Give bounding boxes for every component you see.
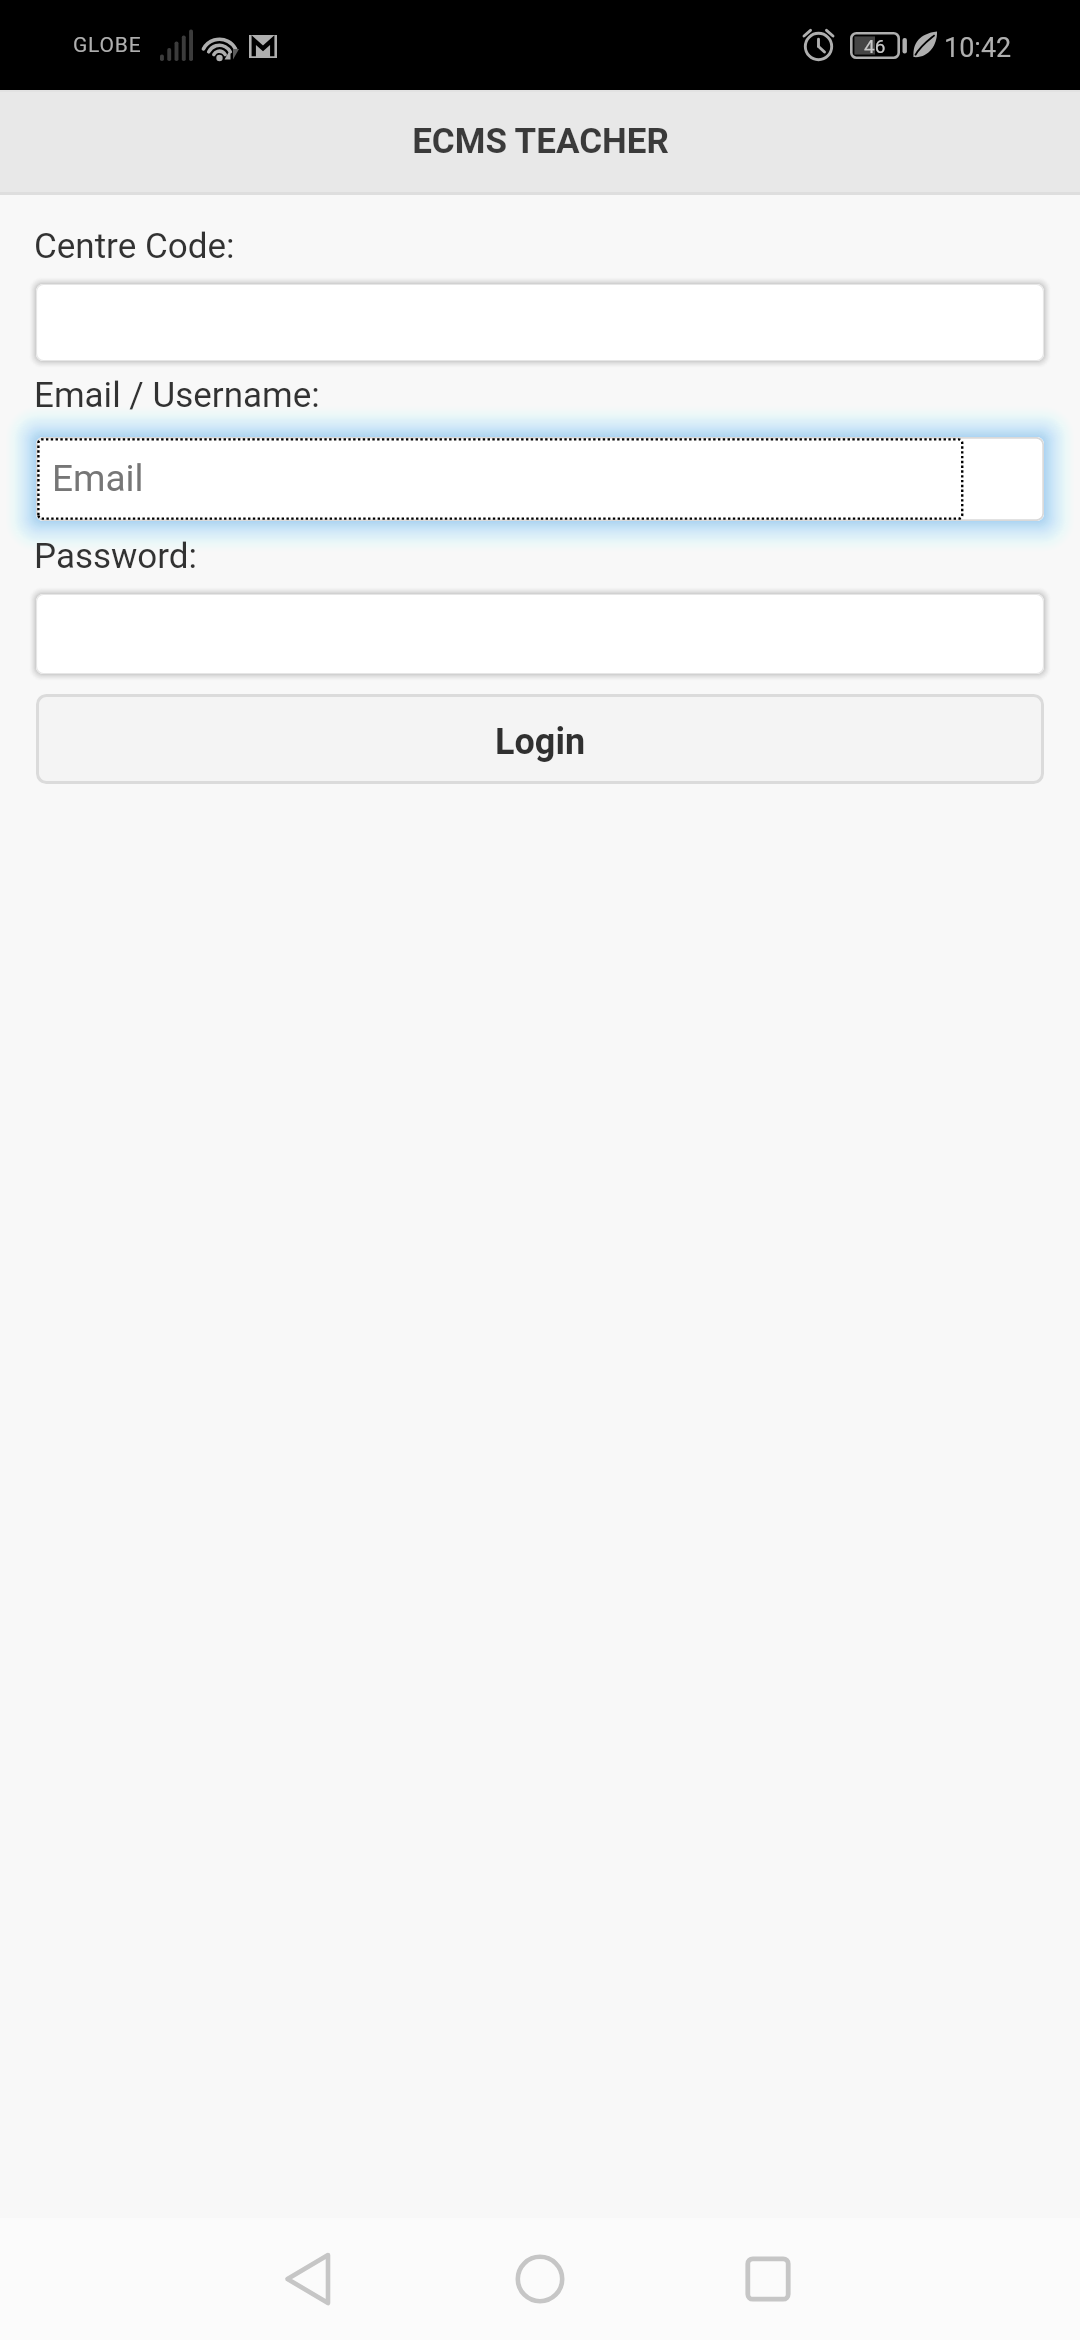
staticText: GLOBE (73, 33, 142, 58)
staticText: ECMS TEACHER (412, 121, 669, 162)
button[interactable] (36, 284, 1044, 361)
staticText: Login (495, 721, 586, 763)
staticText: 46 (864, 35, 886, 57)
button[interactable]: Email (36, 437, 1044, 521)
button[interactable]: Login (36, 694, 1044, 784)
staticText: 10:42 (944, 32, 1012, 64)
button[interactable]: Home (480, 2218, 600, 2340)
button[interactable]: Back (248, 2218, 368, 2340)
staticText: Centre Code: (34, 226, 235, 267)
button[interactable]: Recent apps (708, 2218, 828, 2340)
staticText: Email (52, 457, 144, 500)
staticText: Email / Username: (34, 375, 320, 416)
staticText: Password: (34, 536, 198, 577)
button[interactable] (36, 594, 1044, 674)
